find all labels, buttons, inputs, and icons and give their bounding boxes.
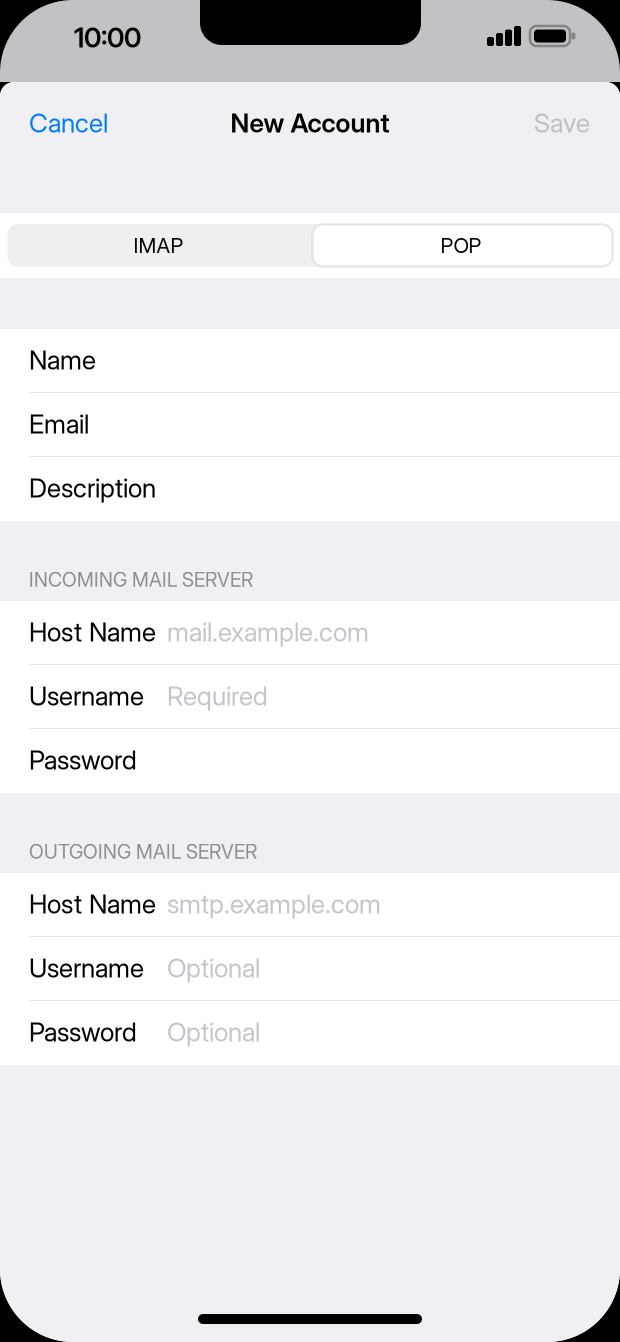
staticText: Username: [29, 952, 144, 984]
staticText: mail.example.com: [167, 616, 369, 648]
staticText: Password: [29, 744, 137, 776]
staticText: Host Name: [29, 888, 156, 920]
staticText: Required: [167, 680, 268, 712]
button[interactable]: Username: [0, 665, 620, 729]
button[interactable]: Description: [0, 457, 620, 521]
staticText: New Account: [230, 107, 389, 139]
staticText: Email: [29, 408, 89, 440]
button[interactable]: Host Name: [0, 873, 620, 937]
button[interactable]: Password: [0, 729, 620, 793]
staticText: IMAP: [133, 233, 183, 258]
button[interactable]: Name: [0, 329, 620, 393]
staticText: Host Name: [29, 616, 156, 648]
button[interactable]: Cancel: [0, 94, 130, 152]
staticText: INCOMING MAIL SERVER: [29, 568, 253, 592]
staticText: Password: [29, 1016, 137, 1048]
staticText: Optional: [167, 1016, 260, 1048]
button[interactable]: Password: [0, 1001, 620, 1065]
staticText: OUTGOING MAIL SERVER: [29, 840, 257, 864]
button[interactable]: IMAP: [7, 224, 309, 267]
staticText: smtp.example.com: [167, 888, 381, 920]
staticText: 10:00: [74, 21, 141, 54]
staticText: Name: [29, 344, 96, 376]
staticText: Cancel: [29, 107, 108, 139]
staticText: POP: [440, 233, 481, 258]
button[interactable]: Save: [0, 94, 120, 152]
staticText: Optional: [167, 952, 260, 984]
staticText: Save: [534, 107, 590, 139]
button[interactable]: Username: [0, 937, 620, 1001]
button[interactable]: Host Name: [0, 601, 620, 665]
staticText: Description: [29, 472, 156, 504]
button[interactable]: POP: [309, 224, 612, 267]
button[interactable]: Email: [0, 393, 620, 457]
staticText: Username: [29, 680, 144, 712]
